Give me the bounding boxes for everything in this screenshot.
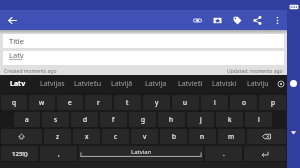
button[interactable]: x bbox=[73, 129, 100, 144]
button[interactable]: More options bbox=[267, 10, 287, 30]
button[interactable] bbox=[1, 129, 42, 144]
button[interactable]: a bbox=[14, 112, 40, 127]
staticText: z bbox=[56, 132, 60, 141]
button[interactable]: Back bbox=[287, 126, 300, 139]
button[interactable]: y bbox=[143, 95, 170, 110]
button[interactable]: Latvijā bbox=[105, 75, 139, 92]
button[interactable]: q bbox=[1, 95, 27, 110]
button[interactable]: s bbox=[42, 112, 69, 127]
staticText: Latvijā bbox=[111, 79, 133, 89]
button[interactable]: z bbox=[44, 129, 71, 144]
button[interactable]: h bbox=[158, 112, 185, 127]
button[interactable]: m bbox=[218, 129, 245, 144]
staticText: y bbox=[155, 98, 159, 107]
staticText: g bbox=[141, 115, 145, 124]
button[interactable]: Space bbox=[79, 146, 203, 161]
button[interactable]: Home bbox=[287, 77, 300, 90]
staticText: x bbox=[85, 132, 89, 141]
button[interactable]: Navigate up bbox=[0, 10, 24, 30]
staticText: Latvian bbox=[131, 148, 152, 156]
staticText: s bbox=[54, 115, 58, 124]
staticText: Latviju bbox=[247, 79, 269, 89]
staticText: Latvijas bbox=[40, 79, 65, 89]
button[interactable]: w bbox=[29, 95, 55, 110]
staticText: e bbox=[68, 98, 72, 107]
button[interactable]: , bbox=[40, 146, 77, 161]
button[interactable]: Share bbox=[247, 10, 267, 30]
staticText: j bbox=[200, 115, 202, 124]
button[interactable]: Title bbox=[3, 34, 284, 48]
button[interactable]: Latvieši bbox=[173, 75, 207, 92]
staticText: Latv bbox=[10, 79, 26, 89]
button[interactable]: l bbox=[245, 112, 272, 127]
staticText: Title bbox=[9, 36, 24, 46]
staticText: . bbox=[223, 149, 225, 158]
button[interactable]: f bbox=[100, 112, 127, 127]
staticText: a bbox=[25, 115, 29, 124]
staticText: Latv bbox=[9, 50, 24, 60]
staticText: c bbox=[114, 132, 118, 141]
button[interactable]: Link bbox=[187, 10, 207, 30]
button[interactable]: Labels bbox=[227, 10, 247, 30]
staticText: n bbox=[200, 132, 205, 141]
button[interactable]: . bbox=[205, 146, 242, 161]
button[interactable]: Latv bbox=[3, 51, 284, 65]
staticText: w bbox=[39, 98, 45, 107]
staticText: Created moments ago bbox=[4, 68, 57, 75]
button[interactable]: r bbox=[85, 95, 112, 110]
staticText: u bbox=[183, 98, 188, 107]
button[interactable]: i bbox=[201, 95, 228, 110]
button[interactable]: t bbox=[114, 95, 141, 110]
button[interactable]: Latviešu bbox=[70, 75, 105, 92]
staticText: p bbox=[271, 98, 275, 107]
staticText: o bbox=[242, 98, 246, 107]
button[interactable]: e bbox=[57, 95, 83, 110]
staticText: Latvija bbox=[145, 79, 167, 89]
button[interactable]: p bbox=[259, 95, 286, 110]
other: Shift bbox=[0, 128, 43, 145]
button[interactable]: c bbox=[102, 129, 129, 144]
button[interactable]: Latvijas bbox=[35, 75, 70, 92]
other: Enter bbox=[243, 145, 287, 162]
staticText: q bbox=[12, 98, 16, 107]
button[interactable]: g bbox=[129, 112, 156, 127]
staticText: b bbox=[172, 132, 176, 141]
staticText: , bbox=[58, 149, 60, 158]
button[interactable]: Latviski bbox=[207, 75, 241, 92]
staticText: d bbox=[83, 115, 87, 124]
staticText: v bbox=[143, 132, 147, 141]
button[interactable]: d bbox=[71, 112, 98, 127]
button[interactable]: Expand suggestions bbox=[275, 75, 287, 92]
staticText: r bbox=[97, 98, 100, 107]
staticText: i bbox=[214, 98, 216, 107]
staticText: Latviešu bbox=[74, 79, 102, 89]
staticText: l bbox=[258, 115, 260, 124]
staticText: k bbox=[228, 115, 232, 124]
staticText: t bbox=[126, 98, 129, 107]
staticText: Latvieši bbox=[178, 79, 203, 89]
button[interactable]: o bbox=[230, 95, 257, 110]
button[interactable]: Insert photo bbox=[207, 10, 227, 30]
button[interactable]: Latv bbox=[0, 75, 35, 92]
button[interactable]: k bbox=[216, 112, 243, 127]
button[interactable]: u bbox=[172, 95, 199, 110]
staticText: f bbox=[112, 115, 115, 124]
button[interactable]: Latviju bbox=[241, 75, 275, 92]
button[interactable]: Latvija bbox=[139, 75, 173, 92]
button[interactable] bbox=[244, 146, 286, 161]
staticText: h bbox=[169, 115, 174, 124]
button[interactable]: b bbox=[160, 129, 187, 144]
button[interactable]: j bbox=[187, 112, 214, 127]
staticText: Latviski bbox=[212, 79, 237, 89]
button[interactable]: 123!() bbox=[1, 146, 38, 161]
staticText: 123!() bbox=[12, 150, 28, 158]
button[interactable]: v bbox=[131, 129, 158, 144]
button[interactable]: n bbox=[189, 129, 216, 144]
staticText: Updated: moments ago bbox=[227, 68, 283, 75]
button[interactable] bbox=[247, 129, 286, 144]
staticText: m bbox=[228, 132, 235, 141]
other: Backspace bbox=[246, 128, 287, 145]
